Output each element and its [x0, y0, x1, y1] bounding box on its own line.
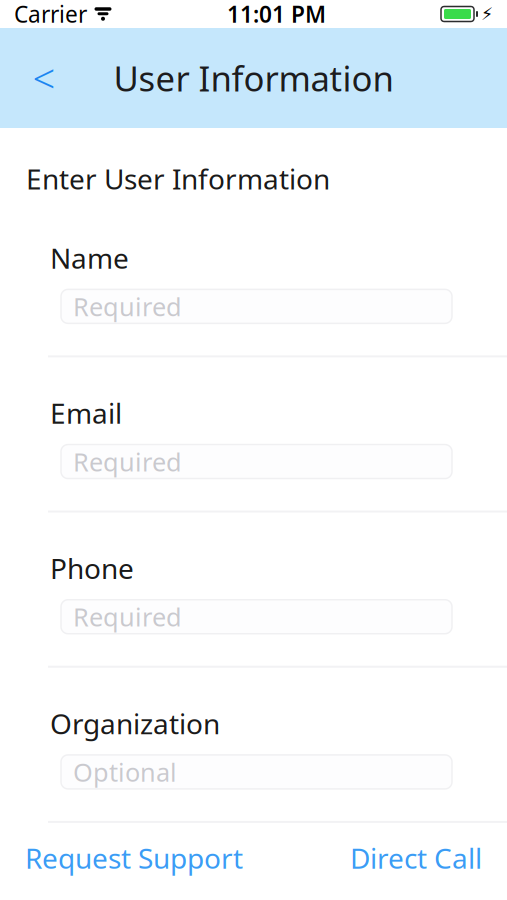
staticText: Email	[50, 394, 122, 432]
staticText: Request Support	[25, 839, 243, 877]
button[interactable]: Request Support	[25, 839, 243, 877]
staticText: Direct Call	[350, 839, 482, 877]
staticText: Enter User Information	[26, 160, 330, 197]
button[interactable]: Required	[61, 444, 452, 478]
staticText: Required	[73, 445, 182, 478]
staticText: <	[32, 51, 55, 104]
staticText: Required	[73, 289, 182, 323]
button[interactable]: Direct Call	[350, 839, 482, 877]
staticText: Carrier	[14, 0, 87, 29]
staticText: Name	[50, 239, 129, 276]
staticText: ⚡︎	[481, 4, 493, 24]
button[interactable]: Required	[61, 600, 452, 634]
staticText: Organization	[50, 705, 220, 742]
staticText: 11:01 PM	[227, 0, 326, 29]
staticText: Optional	[73, 755, 177, 789]
button[interactable]: Back	[16, 48, 72, 108]
staticText: Phone	[50, 549, 134, 587]
button[interactable]: Optional	[61, 755, 452, 789]
staticText: Required	[73, 600, 182, 633]
button[interactable]: Required	[61, 289, 452, 323]
staticText: User Information	[113, 55, 393, 101]
